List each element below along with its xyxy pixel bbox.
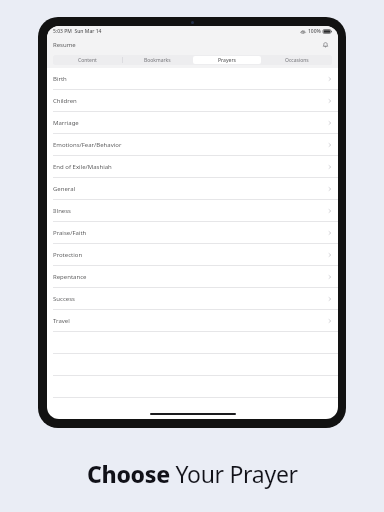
button[interactable]: General: [47, 178, 338, 199]
button[interactable]: Repentance: [47, 266, 338, 287]
staticText: Praise/Faith: [53, 229, 87, 237]
staticText: 100%: [308, 28, 321, 35]
staticText: Content: [78, 57, 97, 64]
button[interactable]: Children: [47, 90, 338, 111]
staticText: Occasions: [285, 57, 309, 64]
button[interactable]: Occasions: [263, 56, 331, 64]
staticText: Bookmarks: [144, 57, 171, 64]
staticText: General: [53, 185, 76, 193]
staticText: End of Exile/Mashiah: [53, 163, 112, 171]
staticText: 5:03 PM Sun Mar 14: [53, 28, 102, 35]
button[interactable]: Birth: [47, 68, 338, 89]
button[interactable]: Emotions/Fear/Behavior: [47, 134, 338, 155]
staticText: Choose Your Prayer: [87, 458, 298, 489]
staticText: Illness: [53, 207, 71, 215]
staticText: Travel: [53, 317, 70, 325]
button[interactable]: Praise/Faith: [47, 222, 338, 243]
staticText: Protection: [53, 251, 83, 259]
staticText: Marriage: [53, 119, 79, 127]
button[interactable]: Bookmarks: [124, 56, 191, 64]
staticText: Children: [53, 97, 77, 105]
staticText: Success: [53, 295, 75, 303]
staticText: Prayers: [218, 57, 236, 64]
button[interactable]: End of Exile/Mashiah: [47, 156, 338, 177]
button[interactable]: Protection: [47, 244, 338, 265]
staticText: Resume: [53, 41, 76, 49]
staticText: Emotions/Fear/Behavior: [53, 141, 122, 149]
button[interactable]: Prayers: [193, 56, 261, 64]
button[interactable]: Marriage: [47, 112, 338, 133]
button[interactable]: Success: [47, 288, 338, 309]
button[interactable]: Content: [54, 56, 121, 64]
button[interactable]: Notifications: [319, 38, 332, 51]
staticText: Birth: [53, 75, 67, 83]
button[interactable]: Travel: [47, 310, 338, 331]
button[interactable]: Illness: [47, 200, 338, 221]
staticText: Repentance: [53, 273, 87, 281]
